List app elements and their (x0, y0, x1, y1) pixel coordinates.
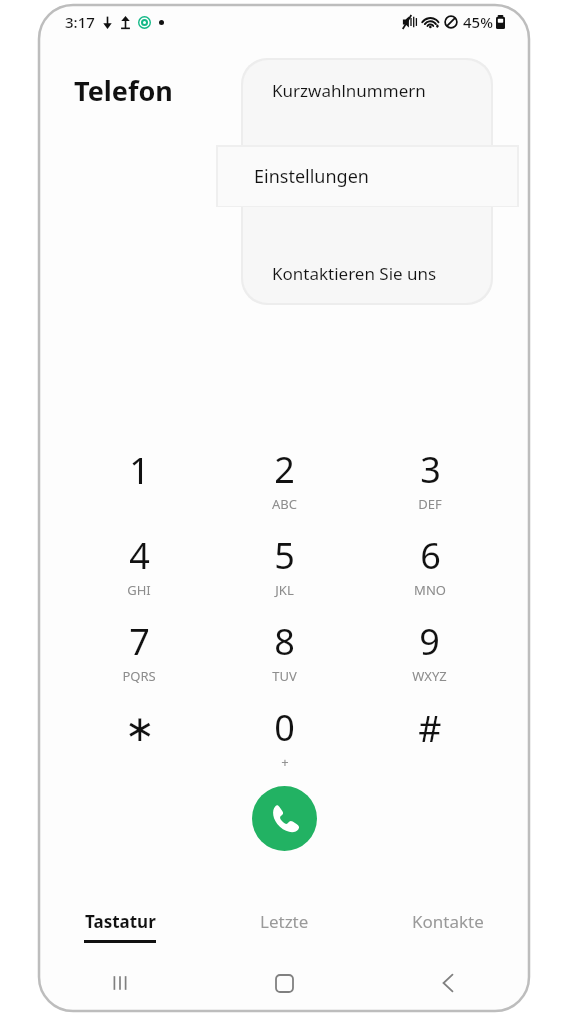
staticText: Kontakte (412, 910, 484, 933)
staticText: 3:17 (65, 12, 95, 32)
staticText: TUV (272, 667, 297, 685)
staticText: Einstellungen (254, 164, 369, 189)
button[interactable]: Mit Tasten öffnen (243, 121, 491, 182)
staticText: 3 (420, 445, 441, 494)
button[interactable]: Tastatur (38, 898, 202, 954)
button[interactable]: Einstellungen (218, 147, 517, 206)
button[interactable]: ∗ (66, 694, 212, 780)
staticText: 7 (129, 617, 150, 666)
staticText: GHI (127, 581, 151, 599)
staticText: Letzte (260, 910, 309, 933)
button[interactable]: # (357, 694, 502, 780)
button[interactable]: 4 (66, 522, 212, 608)
staticText: 8 (274, 617, 295, 666)
staticText: 0 (274, 703, 295, 752)
button[interactable]: 7 (66, 608, 212, 694)
staticText: Tastatur (85, 910, 156, 933)
button[interactable]: 2 (212, 436, 357, 522)
staticText: Telefon (74, 72, 173, 109)
button[interactable]: Kontakte (366, 898, 530, 954)
button[interactable]: 5 (212, 522, 357, 608)
button[interactable]: Kurzwahlnummern (243, 60, 491, 121)
staticText: JKL (275, 581, 294, 599)
staticText: 2 (274, 445, 295, 494)
staticText: 1 (129, 446, 150, 495)
button[interactable]: Anrufen (252, 786, 317, 851)
button[interactable]: 1 (66, 436, 212, 522)
button[interactable]: Letzte Apps (38, 954, 202, 1012)
button[interactable]: Startseite (202, 954, 366, 1012)
button[interactable]: Kontaktieren Sie uns (243, 243, 491, 303)
staticText: 9 (419, 617, 440, 666)
staticText: WXYZ (412, 667, 447, 685)
staticText: Kontaktieren Sie uns (272, 262, 437, 285)
button[interactable]: Zurück (366, 954, 530, 1012)
staticText: 4 (129, 531, 150, 580)
button[interactable]: Letzte (202, 898, 366, 954)
staticText: DEF (418, 495, 442, 513)
staticText: Kurzwahlnummern (272, 79, 426, 102)
staticText: ABC (272, 495, 297, 513)
staticText: 45% (463, 12, 493, 32)
staticText: ∗ (124, 708, 155, 750)
staticText: PQRS (122, 667, 156, 685)
button[interactable]: 6 (357, 522, 502, 608)
button[interactable]: 3 (357, 436, 502, 522)
button[interactable]: 0 (212, 694, 357, 780)
staticText: # (418, 704, 442, 753)
staticText: Mit Tasten öffnen (272, 140, 412, 163)
staticText: 5 (274, 531, 295, 580)
button[interactable]: 9 (357, 608, 502, 694)
staticText: MNO (414, 581, 446, 599)
staticText: + (281, 753, 289, 771)
button[interactable]: 8 (212, 608, 357, 694)
staticText: 6 (420, 531, 441, 580)
